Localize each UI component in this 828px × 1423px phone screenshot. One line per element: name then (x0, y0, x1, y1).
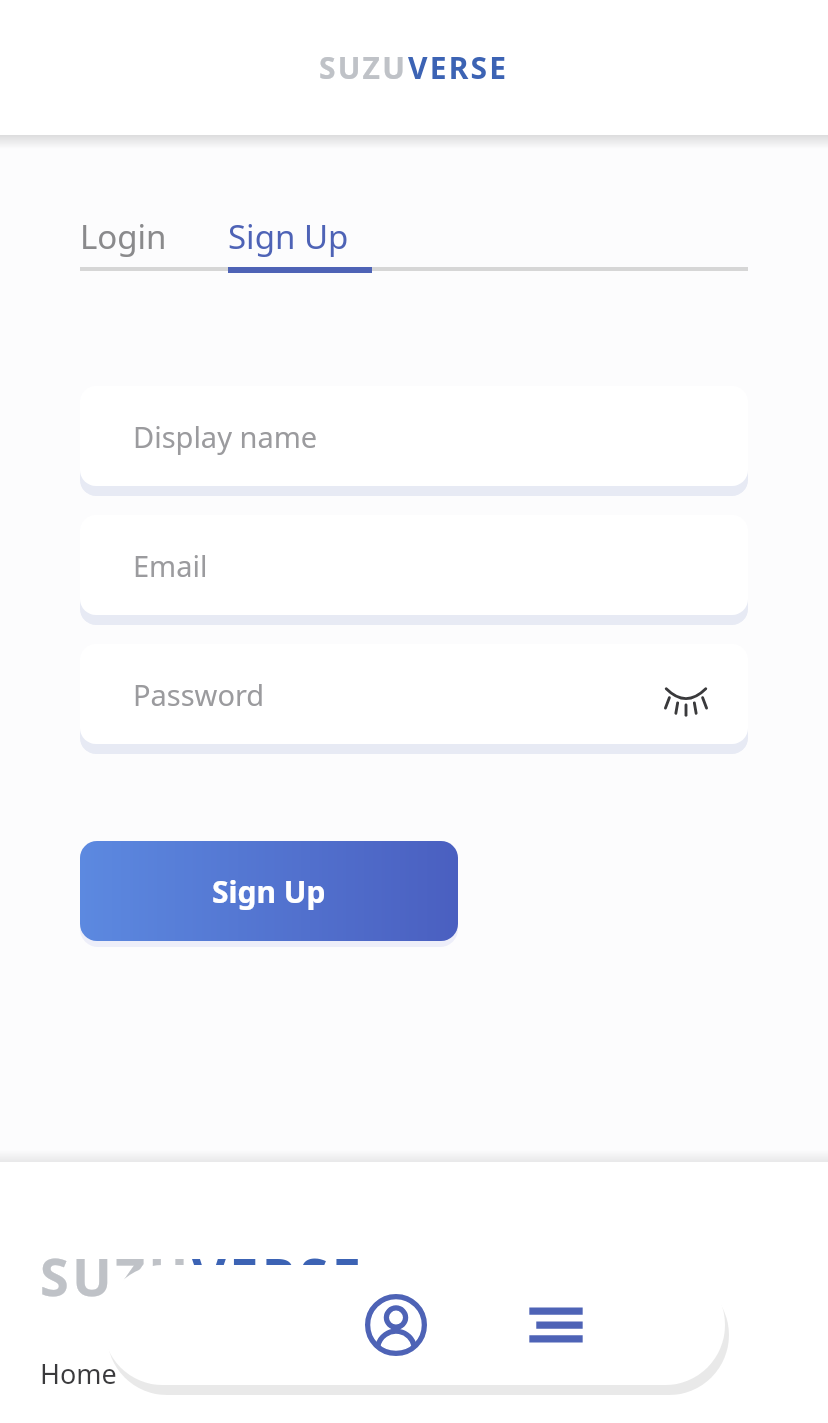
staticText: Display name (133, 417, 318, 456)
staticText: Login (80, 214, 167, 259)
staticText: SUZU (40, 1240, 192, 1311)
button[interactable]: Email (80, 515, 748, 615)
button[interactable]: Sign Up (228, 205, 372, 267)
staticText: Home (40, 1355, 117, 1392)
button[interactable]: Sign Up (80, 841, 458, 941)
staticText: VERSE (192, 1240, 365, 1311)
button[interactable]: Menu (521, 1290, 591, 1360)
button[interactable]: Login (80, 205, 228, 267)
staticText: Password (133, 675, 265, 714)
staticText: VERSE (408, 47, 509, 88)
button[interactable]: Home (40, 1355, 117, 1392)
staticText: Email (133, 546, 208, 585)
button[interactable]: Password (80, 644, 748, 744)
staticText: SUZU (319, 47, 408, 88)
button[interactable]: Account (361, 1290, 431, 1360)
button[interactable]: Display name (80, 386, 748, 486)
button[interactable]: Show password (656, 664, 716, 724)
staticText: Sign Up (212, 871, 326, 912)
staticText: Sign Up (228, 214, 349, 259)
